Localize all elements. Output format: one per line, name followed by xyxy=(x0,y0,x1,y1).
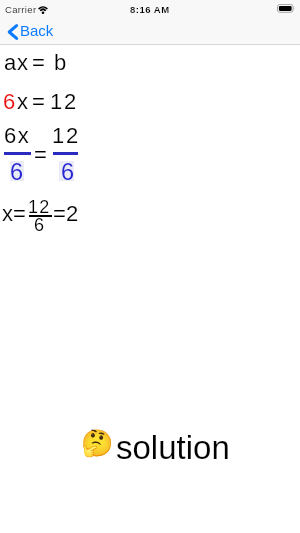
staticText: 6x xyxy=(4,123,31,148)
staticText: Carrier xyxy=(5,4,37,15)
staticText: 6 xyxy=(10,159,24,185)
staticText: ax xyxy=(4,50,29,75)
staticText: = xyxy=(34,142,47,167)
staticText: b xyxy=(54,50,67,75)
staticText: 🤔 xyxy=(81,428,114,458)
staticText: solution xyxy=(116,429,230,466)
staticText: 6 xyxy=(3,89,16,114)
staticText: Back xyxy=(20,22,54,39)
staticText: 12 xyxy=(50,89,79,114)
staticText: 12 xyxy=(28,197,51,217)
staticText: 6 xyxy=(34,215,45,235)
staticText: = xyxy=(32,50,45,75)
staticText: x xyxy=(2,201,13,226)
button[interactable] xyxy=(4,20,54,42)
staticText: x xyxy=(17,89,28,114)
staticText: 8:16 AM xyxy=(130,4,170,15)
button[interactable] xyxy=(80,426,230,462)
staticText: = xyxy=(32,89,45,114)
staticText: = xyxy=(13,201,26,226)
staticText: = xyxy=(53,201,66,226)
staticText: 2 xyxy=(66,201,79,226)
staticText: 12 xyxy=(52,123,81,148)
staticText: 6 xyxy=(61,159,75,185)
